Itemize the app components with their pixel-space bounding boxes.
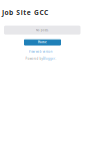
staticText: Blogger — [43, 57, 55, 60]
staticText: Powered by — [25, 57, 42, 60]
button[interactable]: View web version — [0, 50, 83, 53]
button[interactable]: Home — [24, 39, 61, 45]
staticText: Job Site GCC — [2, 8, 48, 17]
staticText: Home — [38, 40, 47, 44]
staticText: View web version — [29, 50, 53, 53]
staticText: No posts. — [36, 28, 49, 32]
staticText: . — [56, 57, 57, 60]
